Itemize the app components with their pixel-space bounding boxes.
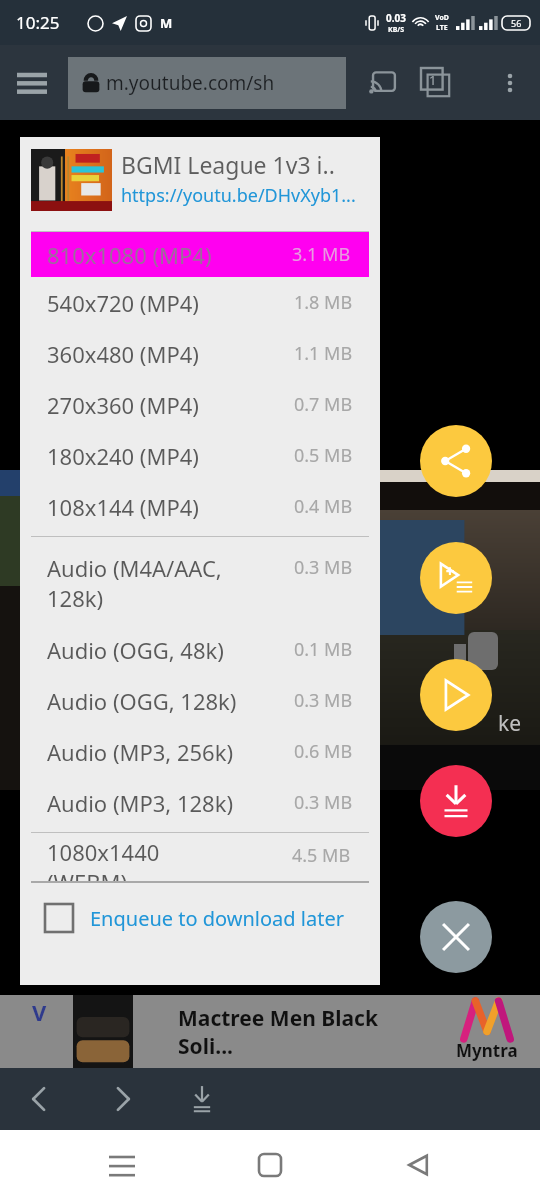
button[interactable]: Audio (MP3, 256k) [47, 726, 353, 777]
button[interactable]: 108x144 (MP4) [47, 481, 353, 532]
staticText: BGMI League 1v3 i.. [121, 149, 335, 180]
staticText: Audio (M4A/AAC, [47, 553, 222, 583]
button[interactable]: Downloads [176, 1073, 228, 1125]
staticText: 0.1 MB [294, 637, 353, 662]
staticText: 1.8 MB [294, 290, 353, 315]
button[interactable]: 270x360 (MP4) [47, 379, 353, 430]
button[interactable]: BGMI League 1v3 i.. [31, 149, 380, 221]
button[interactable]: Forward [96, 1073, 148, 1125]
staticText: 4.5 MB [292, 843, 351, 868]
button[interactable]: 180x240 (MP4) [47, 430, 353, 481]
staticText: ke [498, 709, 522, 738]
staticText: 3.1 MB [292, 242, 351, 267]
staticText: Audio (MP3, 128k) [47, 788, 234, 818]
button[interactable]: Menu [8, 59, 56, 107]
staticText: 540x720 (MP4) [47, 288, 199, 318]
button[interactable]: m.youtube.com/sh [68, 57, 346, 109]
button[interactable]: Tabs [412, 59, 460, 107]
button[interactable]: Download [420, 765, 492, 837]
staticText: https://youtu.be/DHvXyb1... [121, 183, 356, 208]
button[interactable]: Enqueue to download later [45, 883, 380, 953]
button[interactable]: Play [420, 659, 492, 731]
staticText: 0.3 MB [294, 790, 353, 815]
staticText: 0.5 MB [294, 443, 353, 468]
staticText: KB/S [388, 25, 405, 35]
button[interactable]: Add to playlist [420, 542, 492, 614]
button[interactable]: Audio (M4A/AAC, [47, 541, 353, 624]
button[interactable]: Audio (OGG, 128k) [47, 675, 353, 726]
button[interactable]: V [0, 995, 540, 1068]
button[interactable]: Share [420, 425, 492, 497]
staticText: 360x480 (MP4) [47, 339, 199, 369]
staticText: LTE [436, 23, 448, 33]
staticText: Audio (OGG, 48k) [47, 635, 224, 665]
button[interactable]: Audio (MP3, 128k) [47, 777, 353, 828]
staticText: Enqueue to download later [90, 905, 344, 932]
button[interactable]: Cast [358, 59, 406, 107]
staticText: 108x144 (MP4) [47, 492, 199, 522]
staticText: f [18, 758, 25, 781]
button[interactable]: Close [420, 901, 492, 973]
staticText: m.youtube.com/sh [106, 70, 275, 96]
staticText: 0.3 MB [294, 688, 353, 713]
staticText: 810x1080 (MP4) [47, 240, 212, 270]
staticText: 56 [511, 17, 522, 29]
staticText: bgmileagueofficial [42, 760, 156, 778]
staticText: 1080x1440 [47, 837, 160, 867]
staticText: 1 [429, 71, 437, 89]
button[interactable]: 360x480 (MP4) [47, 328, 353, 379]
button[interactable]: Back [14, 1073, 66, 1125]
staticText: 0.4 MB [294, 494, 353, 519]
staticText: 180x240 (MP4) [47, 441, 199, 471]
staticText: Myntra [456, 1039, 518, 1062]
button[interactable]: Recents [96, 1139, 148, 1191]
button[interactable]: 1080x1440 [20, 837, 380, 881]
staticText: (WEBM) [47, 867, 128, 881]
staticText: 0.03 [386, 11, 406, 25]
staticText: 10:25 [16, 11, 60, 34]
staticText: 0.6 MB [294, 739, 353, 764]
staticText: V [32, 997, 47, 1027]
staticText: VoD [435, 13, 449, 23]
button[interactable]: Back [392, 1139, 444, 1191]
staticText: Audio (OGG, 128k) [47, 686, 237, 716]
button[interactable]: Audio (OGG, 48k) [47, 624, 353, 675]
staticText: Audio (MP3, 256k) [47, 737, 234, 767]
staticText: M [160, 14, 173, 32]
staticText: 270x360 (MP4) [47, 390, 199, 420]
staticText: 0.3 MB [294, 555, 353, 580]
staticText: 0.7 MB [294, 392, 353, 417]
button[interactable]: 540x720 (MP4) [47, 277, 353, 328]
button[interactable]: Home [244, 1139, 296, 1191]
staticText: 1.1 MB [294, 341, 353, 366]
staticText: Mactree Men Black Soli... [178, 1004, 410, 1060]
button[interactable]: 810x1080 (MP4) [31, 232, 369, 277]
staticText: 128k) [47, 583, 104, 613]
button[interactable]: More options [486, 59, 534, 107]
